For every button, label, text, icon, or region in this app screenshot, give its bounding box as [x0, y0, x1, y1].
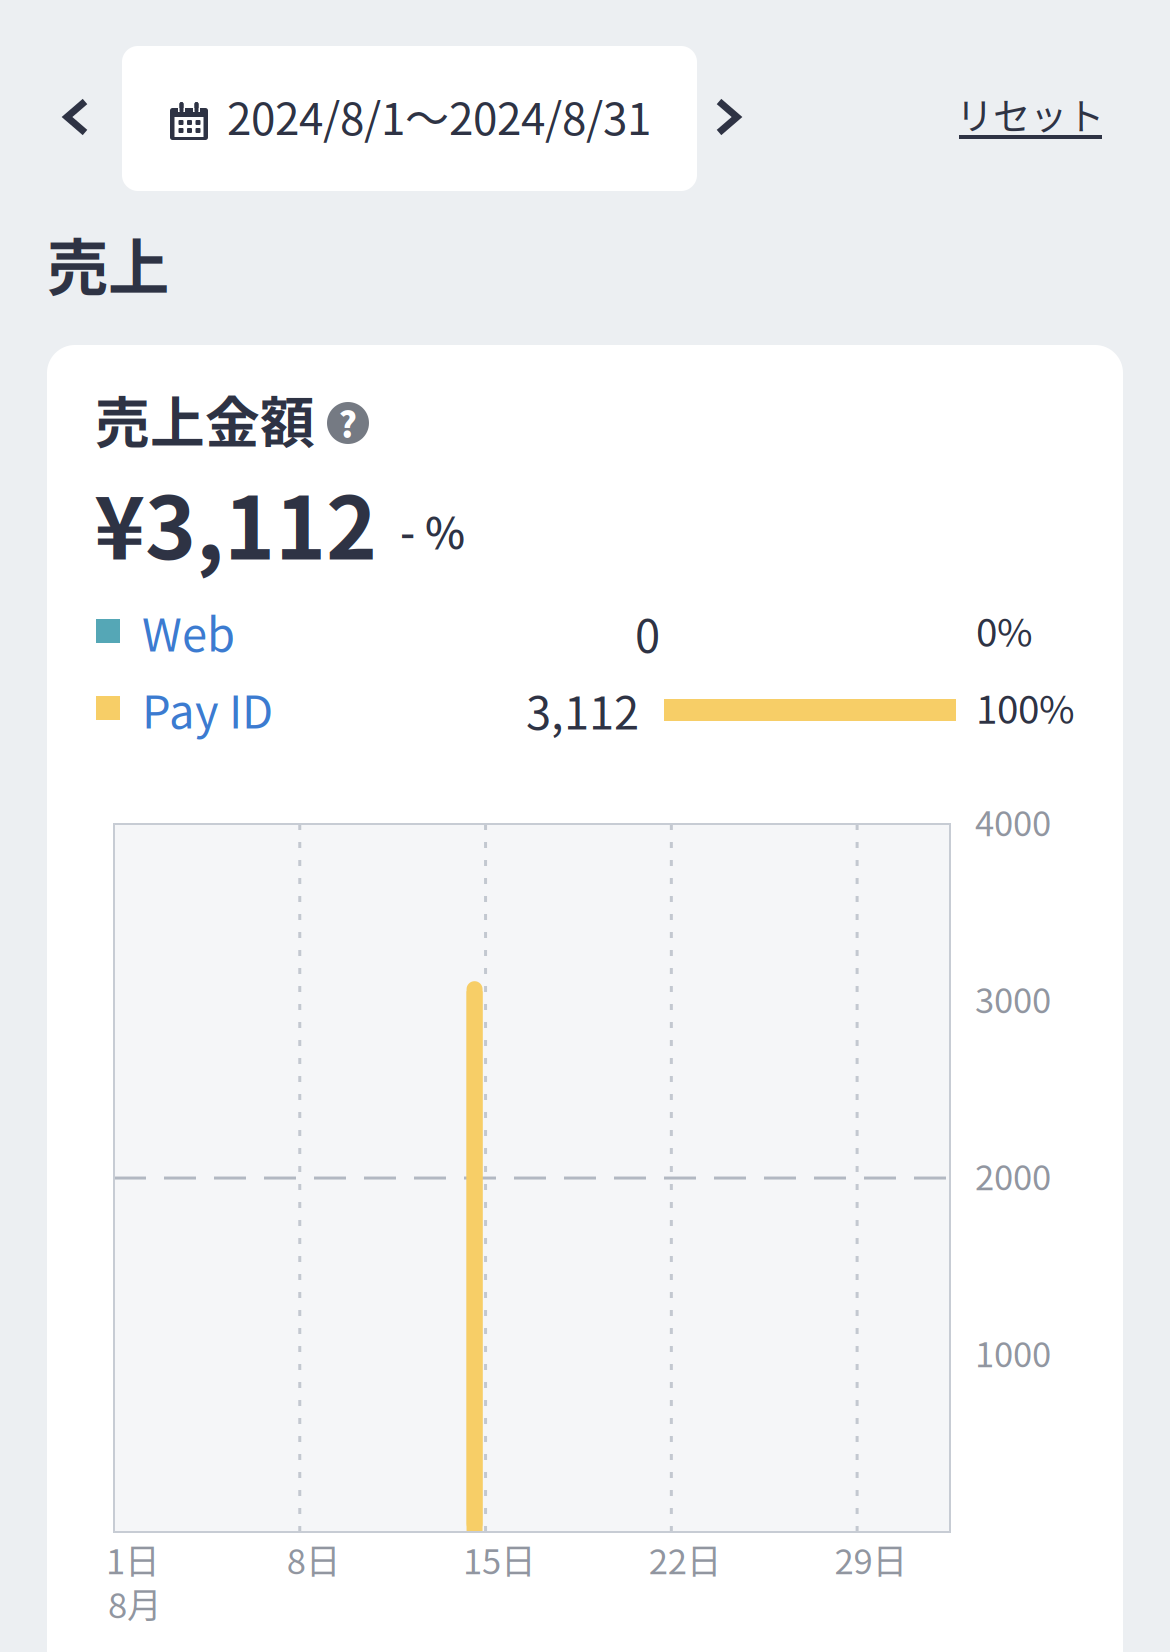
staticText: ? [338, 398, 357, 448]
staticText: 0% [976, 602, 1033, 658]
staticText: 売上金額 [95, 379, 315, 458]
button[interactable]: About sales amount [327, 402, 369, 444]
staticText: ¥3,112 [94, 459, 377, 584]
staticText: 8月 [108, 1578, 162, 1628]
staticText: 2024/8/1〜2024/8/31 [227, 84, 651, 148]
staticText: 売上 [47, 219, 169, 308]
staticText: 1000 [975, 1327, 1051, 1377]
staticText: リセット [956, 87, 1104, 141]
staticText: 15日 [463, 1534, 536, 1584]
button[interactable]: リセット [956, 87, 1146, 197]
staticText: - % [400, 499, 465, 561]
staticText: 29日 [835, 1534, 908, 1584]
button[interactable]: Next period [688, 67, 768, 167]
staticText: Web [142, 599, 235, 665]
staticText: 3000 [975, 973, 1051, 1023]
staticText: 4000 [975, 796, 1051, 846]
staticText: 100% [976, 679, 1075, 735]
staticText: 8日 [287, 1534, 341, 1584]
staticText: 1日 [106, 1534, 160, 1584]
staticText: Pay ID [142, 676, 273, 742]
staticText: 3,112 [526, 677, 639, 743]
button[interactable]: Previous period [36, 67, 116, 167]
staticText: 2000 [975, 1150, 1051, 1200]
staticText: 0 [635, 600, 660, 666]
staticText: 22日 [649, 1534, 722, 1584]
button[interactable]: 2024/8/1〜2024/8/31 [122, 46, 697, 191]
